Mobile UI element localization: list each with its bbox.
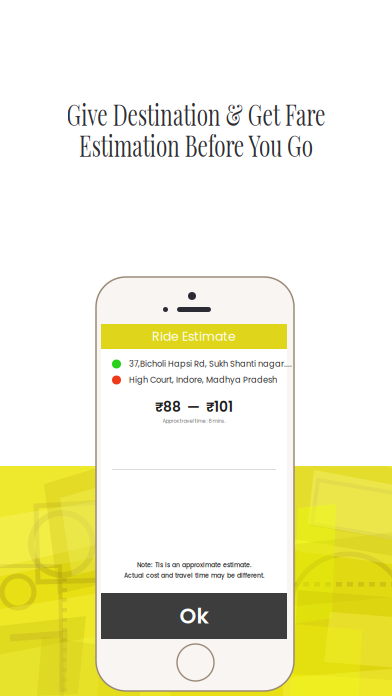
staticText: Actual cost and travel time may be diffe… [124, 571, 264, 580]
staticText: ₹88 — ₹101 [155, 397, 233, 417]
staticText: Estimation Before You Go [29, 125, 363, 164]
staticText: Ride Estimate [152, 328, 236, 345]
staticText: High Court, Indore, Madhya Pradesh [129, 374, 277, 386]
staticText: Note: Tis is an approximate estimate. [137, 561, 251, 569]
button[interactable]: Ok [101, 593, 287, 639]
staticText: Ok [179, 601, 208, 631]
staticText: 37,Bicholi Hapsi Rd, Sukh Shanti nagar..… [129, 358, 292, 370]
staticText: Approx travel time : 8 mins. [162, 417, 225, 425]
staticText: Give Destination & Get Fare [11, 94, 381, 133]
